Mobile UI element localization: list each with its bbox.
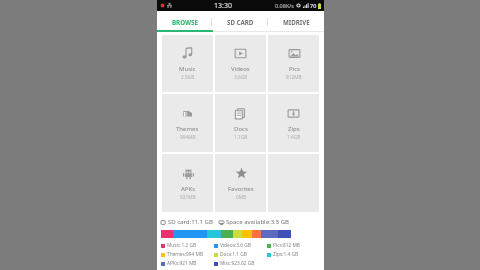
staticText: 13:30 [214,1,232,11]
staticText: Videos [231,65,250,73]
staticText: Misc:923.02 GB [220,260,255,267]
staticText: Music [179,65,196,73]
staticText: 0MB [236,194,247,201]
staticText: Music:1.2 GB [167,242,197,249]
staticText: 812MB [286,74,302,81]
staticText: APKs [181,185,196,193]
staticText: BROWSE [172,18,198,26]
staticText: MIDRIVE [283,18,310,26]
staticText: Themes [176,125,199,133]
button[interactable]: Favorites [215,154,266,212]
staticText: 2.5GB [181,74,195,81]
button[interactable]: Pics [268,35,319,92]
staticText: 70 [310,2,317,9]
staticText: Space available:3.5 GB [226,218,289,226]
staticText: 921MB [180,194,196,201]
staticText: Favorites [228,185,254,193]
staticText: APKs:921 MB [167,260,197,267]
staticText: 3.6GB [234,74,248,81]
button[interactable]: Videos [215,35,266,92]
staticText: 994MB [180,134,196,141]
button[interactable]: Music [162,35,213,92]
button[interactable]: Zips [268,94,319,152]
staticText: Videos:3.6 GB [220,242,251,249]
button[interactable]: BROWSE [157,11,212,32]
staticText: 1.4GB [287,134,301,141]
staticText: Docs [234,125,248,133]
staticText: Pics [289,65,300,73]
button[interactable]: Docs [215,94,266,152]
button[interactable]: SD CARD [212,11,268,32]
staticText: 1.1GB [234,134,248,141]
button[interactable]: MIDRIVE [268,11,324,32]
button[interactable]: APKs [162,154,213,212]
staticText: Pics:812 MB [273,242,300,249]
staticText: Themes:994 MB [167,251,204,258]
staticText: Zips [288,125,300,133]
staticText: SD card:11.1 GB [168,218,213,226]
staticText: SD CARD [227,18,254,26]
staticText: Docs:1.1 GB [220,251,247,258]
staticText: 0.08K/s [275,2,294,9]
staticText: Zips:1.4 GB [273,251,299,258]
button[interactable]: Themes [162,94,213,152]
